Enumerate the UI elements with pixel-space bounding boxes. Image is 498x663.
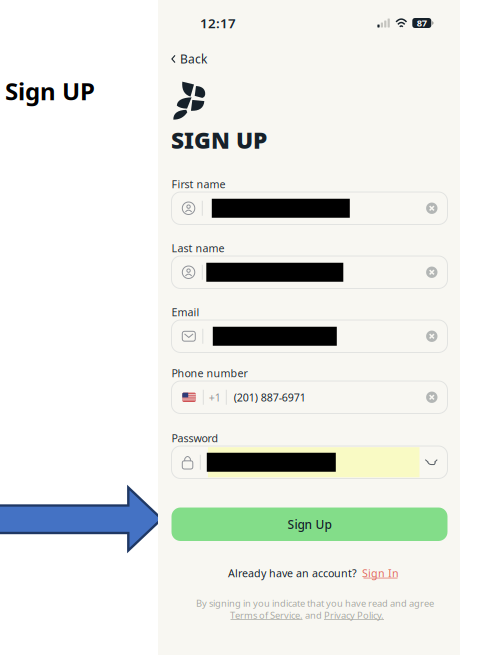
button[interactable]: Back <box>167 47 211 71</box>
staticText: Privacy Policy. <box>324 609 384 621</box>
staticText: Email <box>171 305 199 319</box>
staticText: SIGN UP <box>171 125 267 155</box>
staticText: (201) 887-6971 <box>234 390 306 404</box>
staticText: Password <box>171 431 218 445</box>
button[interactable]: Terms of Service. <box>230 609 303 621</box>
staticText: +1 <box>209 390 221 404</box>
staticText: Sign In <box>362 566 399 580</box>
staticText: 12:17 <box>200 14 236 32</box>
staticText: and <box>303 609 324 621</box>
staticText: 87 <box>417 17 427 29</box>
button[interactable]: Sign Up <box>171 507 447 541</box>
staticText: By signing in you indicate that you have… <box>196 597 434 609</box>
staticText: Sign Up <box>287 516 331 532</box>
button[interactable]: Privacy Policy. <box>324 609 384 621</box>
staticText: Terms of Service. <box>230 609 303 621</box>
staticText: Back <box>180 51 207 67</box>
staticText: Already have an account? <box>228 566 357 580</box>
button[interactable]: Sign In <box>362 566 399 580</box>
staticText: Sign UP <box>5 75 95 107</box>
staticText: First name <box>171 177 225 191</box>
staticText: Phone number <box>171 366 247 380</box>
staticText: Last name <box>171 241 224 255</box>
